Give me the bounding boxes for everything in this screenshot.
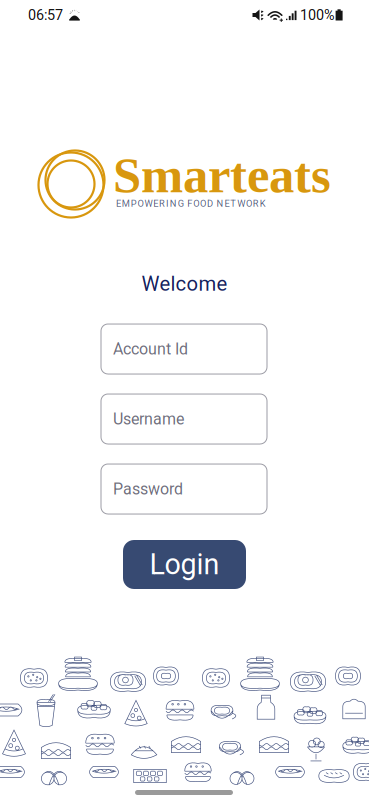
button[interactable]: Account Id [101, 324, 267, 374]
staticText: Username [113, 410, 184, 428]
staticText: Welcome [141, 272, 227, 296]
staticText: Login [149, 548, 219, 581]
button[interactable]: Password [101, 464, 267, 514]
button[interactable]: Login [123, 540, 246, 589]
staticText: EMPOWERING FOOD NETWORK [116, 198, 266, 209]
button[interactable]: Username [101, 394, 267, 444]
staticText: 06:57 [28, 7, 63, 23]
staticText: Account Id [113, 340, 188, 358]
staticText: Password [113, 480, 183, 498]
staticText: 100% [300, 7, 335, 23]
staticText: Smarteats [113, 147, 331, 203]
